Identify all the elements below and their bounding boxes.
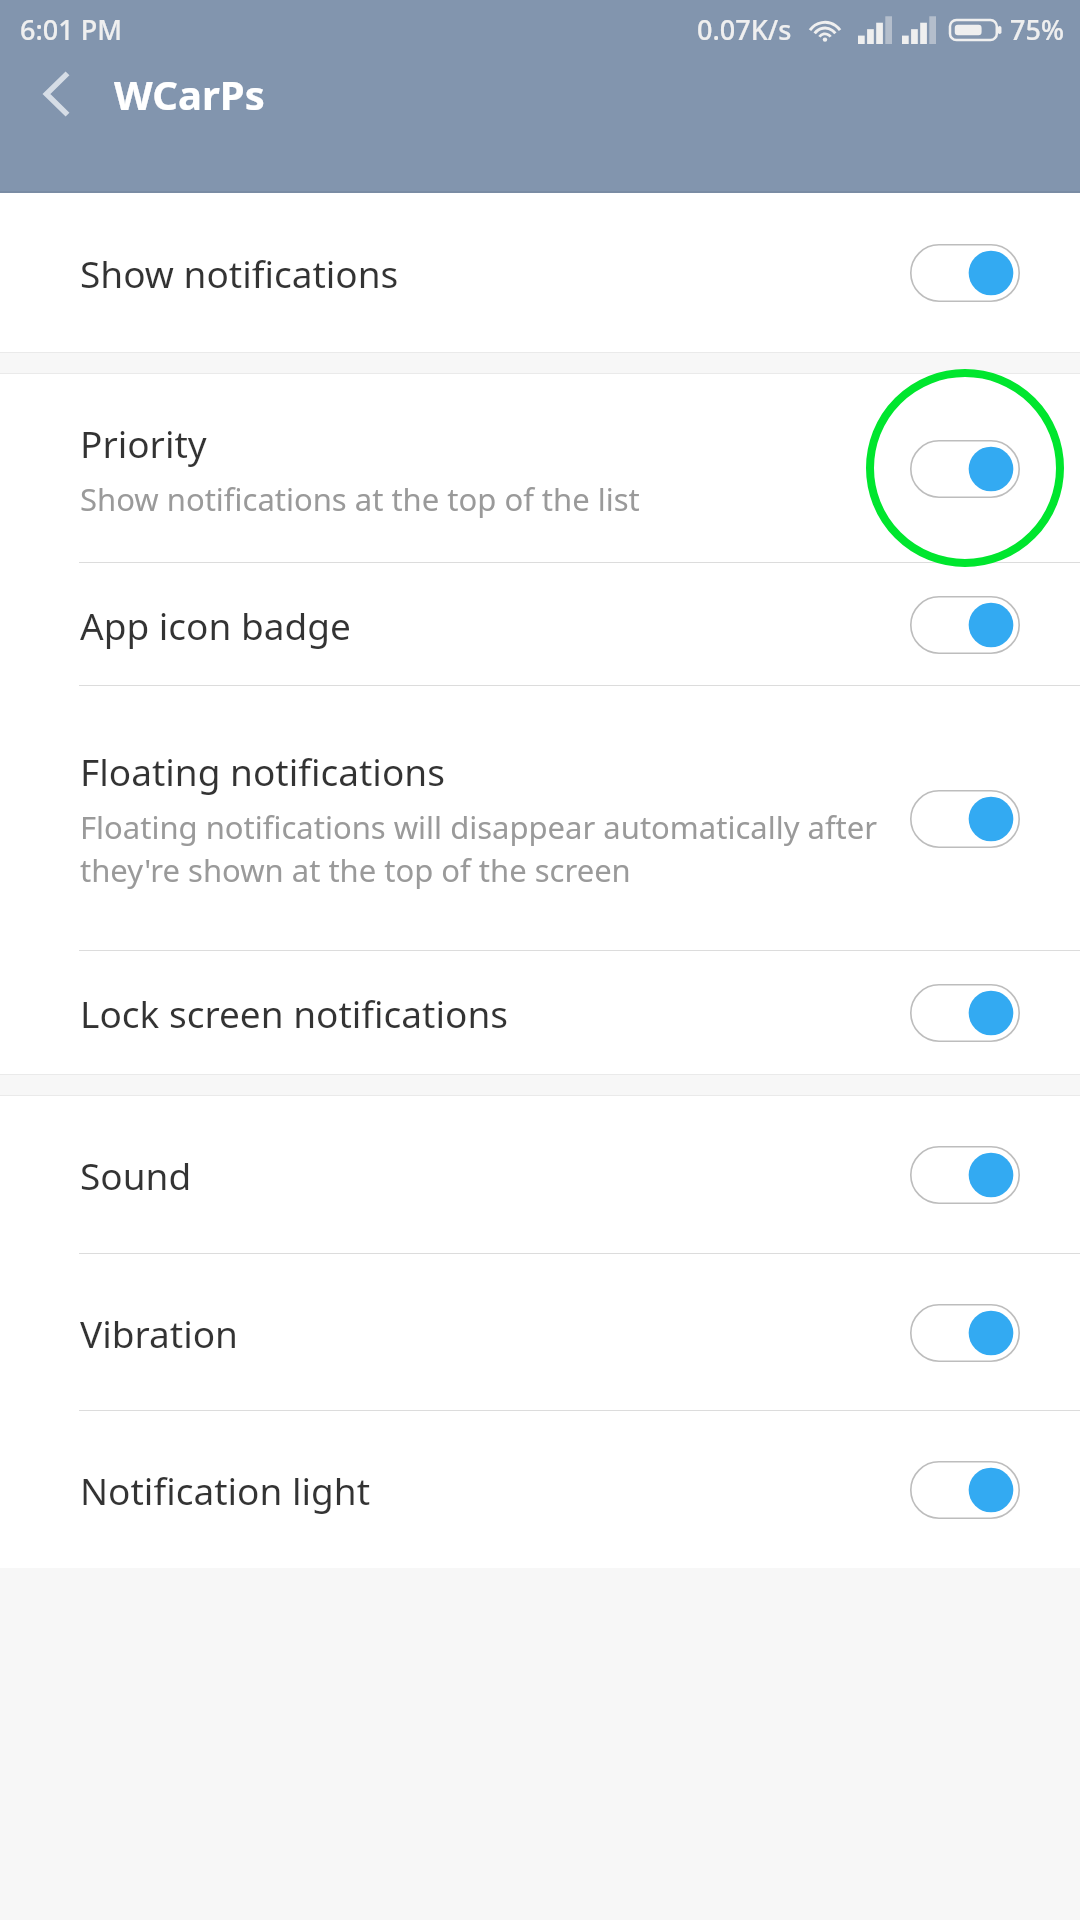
staticText: App icon badge bbox=[80, 600, 351, 650]
button[interactable]: Toggle Floating notifications bbox=[910, 790, 1020, 848]
staticText: Floating notifications bbox=[80, 746, 445, 796]
button[interactable]: Lock screen notifications bbox=[0, 951, 1080, 1074]
button[interactable]: Priority bbox=[0, 374, 1080, 563]
button[interactable]: Vibration bbox=[0, 1254, 1080, 1411]
button[interactable]: Toggle Vibration bbox=[910, 1304, 1020, 1362]
button[interactable]: Back bbox=[22, 58, 94, 130]
staticText: Notification light bbox=[80, 1465, 371, 1515]
staticText: Priority bbox=[80, 418, 207, 468]
button[interactable]: Show notifications bbox=[0, 193, 1080, 352]
button[interactable]: Floating notifications bbox=[0, 686, 1080, 951]
staticText: Vibration bbox=[80, 1308, 238, 1358]
staticText: Show notifications bbox=[80, 248, 399, 298]
staticText: Floating notifications will disappear au… bbox=[80, 806, 886, 891]
staticText: 75% bbox=[1010, 11, 1064, 48]
staticText: WCarPs bbox=[114, 67, 265, 121]
button[interactable]: App icon badge bbox=[0, 563, 1080, 686]
button[interactable]: Toggle Lock screen notifications bbox=[910, 984, 1020, 1042]
staticText: Lock screen notifications bbox=[80, 988, 508, 1038]
staticText: 0.07K/s bbox=[697, 11, 792, 48]
staticText: 6:01 PM bbox=[20, 11, 122, 48]
button[interactable]: Toggle App icon badge bbox=[910, 596, 1020, 654]
staticText: Sound bbox=[80, 1150, 192, 1200]
button[interactable]: Sound bbox=[0, 1096, 1080, 1254]
button[interactable]: Toggle Notification light bbox=[910, 1461, 1020, 1519]
button[interactable]: Toggle Sound bbox=[910, 1146, 1020, 1204]
button[interactable]: Toggle Priority bbox=[910, 440, 1020, 498]
button[interactable]: Toggle Show notifications bbox=[910, 244, 1020, 302]
button[interactable]: Notification light bbox=[0, 1411, 1080, 1568]
staticText: Show notifications at the top of the lis… bbox=[80, 478, 640, 520]
